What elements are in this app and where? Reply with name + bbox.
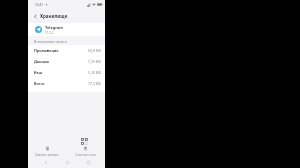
staticText: Очистить кэш [75,153,96,156]
staticText: Приложение [34,48,59,53]
staticText: Использовано памяти [34,40,67,44]
button[interactable]: Всего [28,78,105,89]
button[interactable]: Back [31,12,39,20]
staticText: 77,3 МБ [88,81,102,86]
staticText: Хранилище [40,13,68,19]
button[interactable]: Приложение [28,45,105,56]
staticText: 5,20 МБ [88,70,102,75]
staticText: Данные [34,59,50,64]
button[interactable]: Удалить данные [28,146,66,156]
staticText: 11.2.2 [45,31,54,35]
staticText: Всего [34,81,45,86]
staticText: 7,26 МБ [88,59,102,64]
button[interactable]: Recents [84,158,92,166]
button[interactable]: Кэш [28,67,105,78]
button[interactable]: Данные [28,56,105,67]
staticText: 64,8 МБ [88,48,102,53]
button[interactable]: Очистить кэш [66,146,105,156]
staticText: Telegram [45,25,64,30]
staticText: Кэш [34,70,43,75]
button[interactable]: Back [41,158,49,166]
button[interactable]: Home [63,158,71,166]
staticText: Удалить данные [35,153,59,156]
staticText: 14:41 [35,3,44,7]
